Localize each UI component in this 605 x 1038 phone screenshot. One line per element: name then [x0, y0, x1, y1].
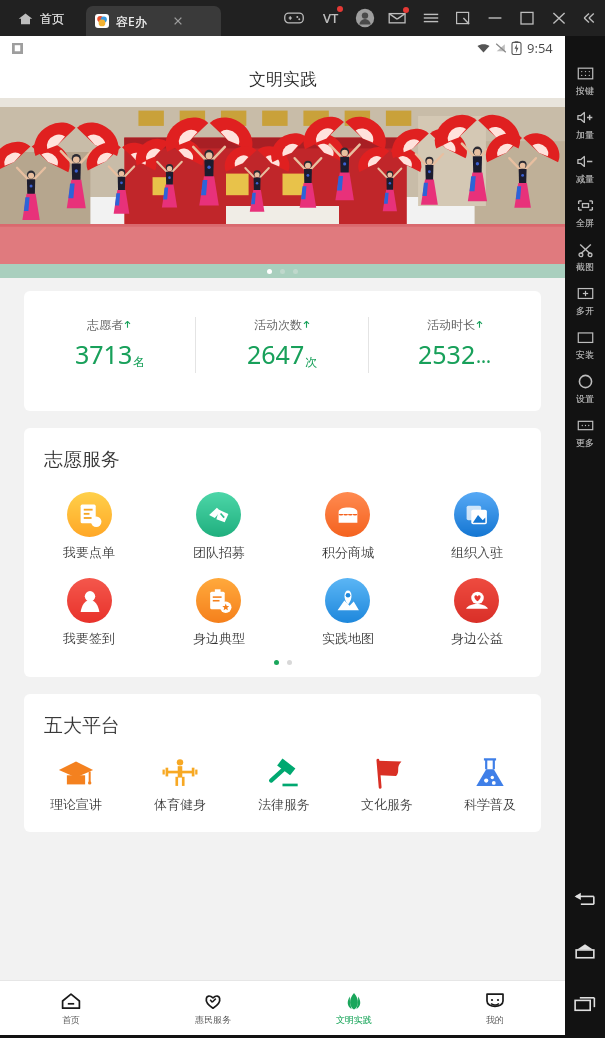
button[interactable]: VT: [319, 6, 343, 30]
button[interactable]: 我要点单: [24, 490, 154, 562]
button[interactable]: Account: [355, 8, 375, 28]
button[interactable]: [0, 98, 565, 278]
button[interactable]: 惠民服务: [142, 981, 283, 1035]
button[interactable]: Back: [572, 886, 598, 912]
button[interactable]: 截图: [565, 234, 605, 278]
staticText: 减量: [576, 173, 594, 184]
staticText: 积分商城: [322, 544, 374, 560]
staticText: 我要签到: [63, 630, 115, 646]
button[interactable]: 积分商城: [283, 490, 412, 562]
button[interactable]: Games: [283, 7, 305, 29]
button[interactable]: 更多: [565, 410, 605, 454]
staticText: 实践地图: [322, 630, 374, 646]
staticText: 加量: [576, 129, 594, 140]
button[interactable]: 加量: [565, 102, 605, 146]
staticText: 首页: [62, 1014, 80, 1025]
staticText: VT: [323, 9, 339, 27]
button[interactable]: 多开: [565, 278, 605, 322]
button[interactable]: 减量: [565, 146, 605, 190]
staticText: 活动次数: [254, 317, 302, 332]
button[interactable]: 我的: [424, 981, 565, 1035]
button[interactable]: 志愿者: [24, 291, 541, 411]
button[interactable]: 身边典型: [154, 576, 283, 648]
staticText: 设置: [576, 393, 594, 404]
staticText: 全屏: [576, 217, 594, 228]
staticText: 截图: [576, 261, 594, 272]
staticText: 五大平台: [44, 714, 120, 738]
button[interactable]: 体育健身: [128, 754, 232, 812]
button[interactable]: Home: [572, 938, 598, 964]
button[interactable]: 我要签到: [24, 576, 154, 648]
staticText: 法律服务: [258, 796, 310, 812]
staticText: 按键: [576, 85, 594, 96]
button[interactable]: 按键: [565, 58, 605, 102]
staticText: 首页: [40, 11, 64, 26]
staticText: 2647: [247, 337, 305, 371]
button[interactable]: 首页: [18, 11, 64, 26]
button[interactable]: Menu: [421, 8, 441, 28]
staticText: 文明实践: [336, 1014, 372, 1025]
staticText: 3713: [75, 337, 133, 371]
staticText: 科学普及: [464, 796, 516, 812]
button[interactable]: 组织入驻: [412, 490, 541, 562]
staticText: 团队招募: [193, 544, 245, 560]
button[interactable]: Close tab: [171, 14, 185, 28]
button[interactable]: 理论宣讲: [24, 754, 128, 812]
button[interactable]: Close: [549, 8, 569, 28]
staticText: 身边公益: [451, 630, 503, 646]
staticText: 理论宣讲: [50, 796, 102, 812]
button[interactable]: 文明实践: [283, 981, 424, 1035]
button[interactable]: 设置: [565, 366, 605, 410]
staticText: 体育健身: [154, 796, 206, 812]
staticText: 身边典型: [193, 630, 245, 646]
button[interactable]: 文化服务: [335, 754, 438, 812]
staticText: 安装: [576, 349, 594, 360]
staticText: 文明实践: [249, 69, 317, 90]
staticText: 志愿服务: [44, 448, 120, 472]
staticText: 我的: [486, 1014, 504, 1025]
button[interactable]: Collapse: [579, 8, 599, 28]
staticText: 2532: [418, 337, 476, 371]
staticText: 名: [133, 354, 145, 369]
button[interactable]: 全屏: [565, 190, 605, 234]
staticText: 容E办: [116, 13, 147, 29]
staticText: 志愿者: [87, 317, 123, 332]
staticText: 多开: [576, 305, 594, 316]
button[interactable]: Resize: [453, 8, 473, 28]
button[interactable]: Recents: [572, 990, 598, 1016]
button[interactable]: 首页: [0, 981, 142, 1035]
staticText: 我要点单: [63, 544, 115, 560]
button[interactable]: 容E办: [86, 6, 221, 36]
staticText: …: [476, 343, 492, 369]
button[interactable]: 科学普及: [438, 754, 541, 812]
staticText: 惠民服务: [195, 1014, 231, 1025]
button[interactable]: 法律服务: [232, 754, 335, 812]
staticText: 活动时长: [427, 317, 475, 332]
staticText: 次: [305, 354, 317, 369]
button[interactable]: Minimize: [485, 8, 505, 28]
staticText: 组织入驻: [451, 544, 503, 560]
button[interactable]: 身边公益: [412, 576, 541, 648]
staticText: 文化服务: [361, 796, 413, 812]
button[interactable]: Messages: [387, 7, 409, 29]
staticText: 9:54: [527, 39, 553, 57]
button[interactable]: 实践地图: [283, 576, 412, 648]
button[interactable]: 团队招募: [154, 490, 283, 562]
button[interactable]: 安装: [565, 322, 605, 366]
staticText: 更多: [576, 437, 594, 448]
button[interactable]: Maximize: [517, 8, 537, 28]
